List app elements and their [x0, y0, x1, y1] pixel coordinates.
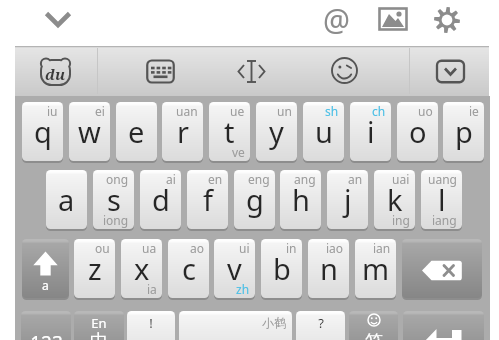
staticText: v	[227, 249, 242, 288]
button[interactable]: ao	[168, 239, 209, 298]
button[interactable]: iu	[22, 102, 63, 161]
button[interactable]: Hide keyboard	[40, 1, 76, 37]
button[interactable]: Emoji	[326, 52, 363, 89]
staticText: ou	[95, 240, 110, 256]
staticText: eng	[248, 171, 270, 187]
button[interactable]: Switch language	[74, 311, 124, 340]
button[interactable]: Collapse keyboard	[432, 53, 469, 90]
staticText: p	[455, 112, 473, 151]
staticText: c	[182, 249, 196, 288]
staticText: an	[348, 171, 363, 187]
button[interactable]: ua	[121, 239, 162, 298]
staticText: j	[344, 180, 352, 219]
staticText: un	[277, 103, 292, 119]
staticText: 符	[365, 331, 383, 340]
button[interactable]: Symbols	[349, 311, 398, 340]
staticText: ?	[318, 314, 324, 332]
staticText: @	[323, 0, 350, 35]
button[interactable]: uo	[397, 102, 438, 161]
button[interactable]: Baidu input settings	[37, 53, 74, 90]
staticText: En	[91, 314, 107, 332]
button[interactable]: Settings	[429, 2, 465, 38]
staticText: uan	[176, 103, 198, 119]
button[interactable]: ian	[355, 239, 396, 298]
button[interactable]: Backspace	[402, 239, 482, 298]
staticText: i	[367, 112, 375, 151]
staticText: ui	[239, 240, 250, 256]
staticText: k	[387, 180, 403, 219]
staticText: z	[88, 249, 102, 288]
staticText: m	[362, 249, 390, 288]
staticText: zh	[236, 281, 250, 297]
staticText: l	[438, 180, 446, 219]
staticText: t	[224, 112, 235, 151]
staticText: sh	[325, 103, 339, 119]
button[interactable]: Pictures	[375, 1, 411, 37]
button[interactable]: ch	[350, 102, 391, 161]
button[interactable]: en	[187, 170, 228, 229]
button[interactable]: ui	[214, 239, 255, 298]
staticText: ang	[294, 171, 316, 187]
button[interactable]: ai	[140, 170, 181, 229]
staticText: 小鹤	[262, 315, 286, 330]
button[interactable]: uang	[421, 170, 462, 229]
button[interactable]: Shift	[22, 239, 69, 298]
button[interactable]: sh	[303, 102, 344, 161]
staticText: e	[128, 112, 145, 151]
staticText: ei	[95, 103, 105, 119]
staticText: !	[149, 314, 153, 332]
button[interactable]: iao	[308, 239, 349, 298]
staticText: a	[42, 277, 49, 293]
staticText: du	[45, 64, 66, 84]
button[interactable]: Exclamation mark	[127, 311, 175, 340]
button[interactable]: in	[261, 239, 302, 298]
button[interactable]: un	[256, 102, 297, 161]
staticText: a	[58, 180, 75, 219]
button[interactable]: Email address	[318, 1, 354, 37]
staticText: ao	[190, 240, 204, 256]
staticText: in	[286, 240, 297, 256]
staticText: q	[34, 112, 52, 151]
button[interactable]: Question mark	[296, 311, 345, 340]
staticText: 中	[90, 330, 108, 340]
staticText: ie	[469, 103, 479, 119]
button[interactable]: ang	[280, 170, 321, 229]
button[interactable]: ei	[69, 102, 110, 161]
button[interactable]: e	[116, 102, 157, 161]
button[interactable]: ue	[209, 102, 250, 161]
staticText: uai	[392, 171, 410, 187]
staticText: n	[320, 249, 338, 288]
button[interactable]: ou	[74, 239, 115, 298]
staticText: ia	[147, 281, 157, 297]
button[interactable]: ong	[93, 170, 134, 229]
staticText: u	[315, 112, 333, 151]
staticText: iao	[326, 240, 344, 256]
staticText: d	[152, 180, 170, 219]
button[interactable]: uai	[374, 170, 415, 229]
staticText: f	[203, 180, 213, 219]
staticText: g	[246, 180, 264, 219]
button[interactable]: Move cursor	[233, 53, 270, 90]
button[interactable]: uan	[162, 102, 203, 161]
staticText: uo	[418, 103, 433, 119]
button[interactable]: Space	[179, 311, 292, 340]
staticText: en	[208, 171, 223, 187]
button[interactable]: Enter	[403, 311, 484, 340]
button[interactable]: a	[46, 170, 87, 229]
staticText: iong	[103, 212, 129, 228]
button[interactable]: ie	[443, 102, 484, 161]
staticText: h	[292, 180, 310, 219]
staticText: ian	[373, 240, 391, 256]
staticText: y	[269, 112, 284, 151]
button[interactable]: Switch keyboard layout	[142, 53, 179, 90]
staticText: 123	[30, 330, 63, 340]
staticText: ue	[230, 103, 245, 119]
button[interactable]: Numbers	[21, 311, 71, 340]
staticText: uang	[428, 171, 457, 187]
button[interactable]: eng	[234, 170, 275, 229]
button[interactable]: an	[327, 170, 368, 229]
staticText: r	[177, 112, 189, 151]
staticText: ua	[142, 240, 157, 256]
